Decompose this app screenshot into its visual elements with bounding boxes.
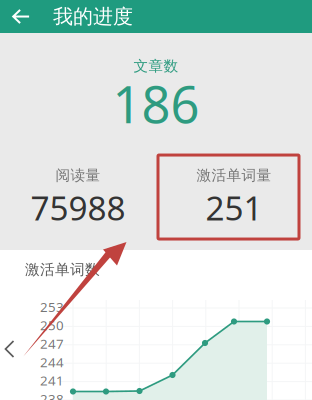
staticText: 253 <box>40 298 64 316</box>
staticText: 186 <box>112 70 199 137</box>
staticText: 251 <box>205 185 262 230</box>
staticText: 238 <box>40 390 64 400</box>
staticText: 75988 <box>30 185 125 230</box>
staticText: 阅读量 <box>55 166 100 184</box>
staticText: 激活单词数 <box>25 260 100 278</box>
staticText: 我的进度 <box>53 4 133 29</box>
staticText: 文章数 <box>133 57 178 75</box>
staticText: 244 <box>40 353 64 371</box>
staticText: 激活单词量 <box>196 166 271 184</box>
staticText: 241 <box>40 371 64 389</box>
staticText: 247 <box>40 335 64 352</box>
button[interactable]: Back <box>5 0 37 33</box>
staticText: 250 <box>40 316 64 334</box>
